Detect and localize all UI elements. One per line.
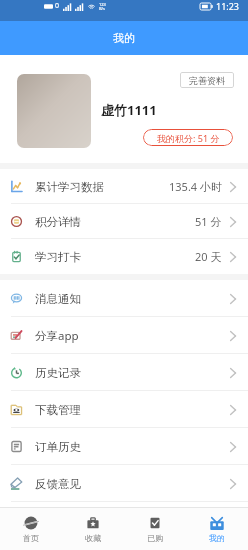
button[interactable]: 反馈意见 — [0, 465, 248, 502]
button[interactable]: 已购 — [124, 508, 186, 550]
staticText: 虚竹1111 — [101, 101, 157, 119]
staticText: 收藏 — [85, 533, 101, 543]
staticText: 累计学习数据 — [35, 180, 104, 194]
staticText: 123 B/s — [99, 2, 106, 11]
staticText: 首页 — [23, 533, 39, 543]
staticText: 20 天 — [195, 249, 222, 264]
staticText: 下载管理 — [35, 403, 81, 417]
staticText: 已购 — [147, 533, 163, 543]
staticText: 积分详情 — [35, 215, 81, 229]
staticText: 135.4 小时 — [169, 179, 222, 194]
staticText: 订单历史 — [35, 440, 81, 454]
button[interactable]: 完善资料 — [180, 72, 234, 88]
button[interactable]: 我的积分: 51 分 — [143, 129, 233, 146]
staticText: 11:23 — [216, 0, 240, 12]
staticText: 我的 — [113, 31, 135, 45]
button[interactable]: 分享app — [0, 317, 248, 354]
button[interactable]: 累计学习数据 — [0, 169, 248, 204]
staticText: 完善资料 — [189, 75, 225, 86]
staticText: 学习打卡 — [35, 250, 81, 264]
staticText: 我的积分: 51 分 — [157, 132, 220, 144]
button[interactable]: 我的 — [186, 508, 248, 550]
staticText: 51 分 — [195, 214, 222, 229]
button[interactable]: 积分详情 — [0, 204, 248, 239]
staticText: 分享app — [35, 328, 79, 344]
button[interactable]: 学习打卡 — [0, 239, 248, 274]
staticText: 0 — [55, 1, 60, 11]
staticText: 消息通知 — [35, 292, 81, 306]
button[interactable]: 收藏 — [62, 508, 124, 550]
staticText: 反馈意见 — [35, 477, 81, 491]
button[interactable]: 首页 — [0, 508, 62, 550]
button[interactable]: 历史记录 — [0, 354, 248, 391]
staticText: 我的 — [209, 533, 225, 543]
button[interactable]: 消息通知 — [0, 280, 248, 317]
button[interactable]: 下载管理 — [0, 391, 248, 428]
button[interactable]: 订单历史 — [0, 428, 248, 465]
staticText: 历史记录 — [35, 366, 81, 380]
